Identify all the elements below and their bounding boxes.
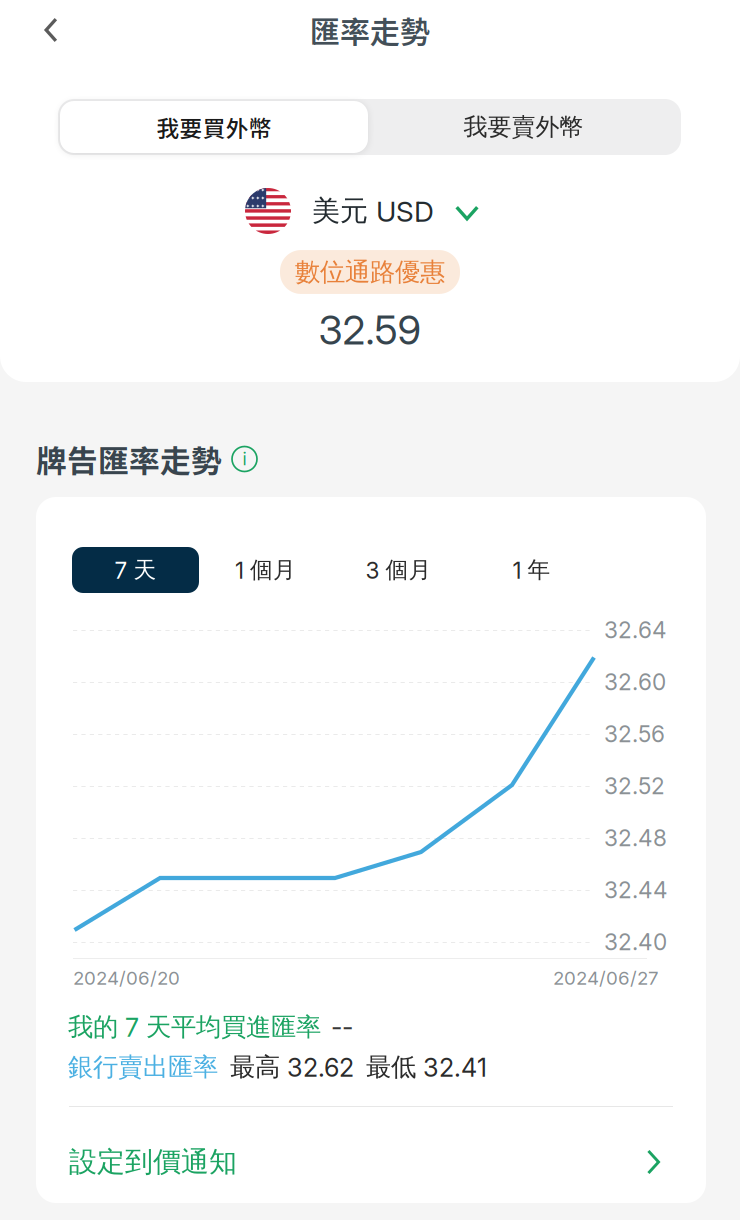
staticText: 32.59: [318, 306, 421, 354]
staticText: 32.44: [604, 876, 668, 904]
staticText: 1 年: [512, 556, 550, 584]
staticText: 最低 32.41: [366, 1051, 487, 1083]
staticText: i: [242, 448, 246, 469]
staticText: 匯率走勢: [310, 8, 430, 52]
staticText: 2024/06/20: [73, 967, 180, 989]
button[interactable]: 1 個月: [199, 547, 332, 593]
staticText: 美元 USD: [312, 193, 434, 229]
staticText: ✦✦✦✦: [246, 203, 266, 209]
button[interactable]: ✦✦✦✦: [0, 185, 732, 237]
staticText: ✦✦✦✦: [246, 195, 266, 201]
button[interactable]: 3 個月: [332, 547, 465, 593]
button[interactable]: 我要賣外幣: [368, 101, 679, 153]
staticText: 32.64: [604, 616, 667, 644]
button[interactable]: 設定到價通知: [36, 1120, 702, 1204]
staticText: 7 天: [114, 556, 156, 584]
button[interactable]: 返回: [21, 1, 81, 59]
staticText: 我要賣外幣: [463, 112, 583, 142]
staticText: 1 個月: [235, 556, 296, 584]
staticText: 3 個月: [365, 556, 431, 584]
staticText: --: [331, 1012, 353, 1042]
staticText: 32.40: [604, 928, 667, 956]
staticText: 32.60: [604, 668, 666, 696]
staticText: 我的 7 天平均買進匯率: [68, 1011, 321, 1043]
staticText: 數位通路優惠: [295, 256, 445, 288]
staticText: ✦✦✦✦: [246, 187, 266, 193]
staticText: 牌告匯率走勢: [36, 437, 222, 481]
staticText: 設定到價通知: [69, 1144, 237, 1180]
staticText: 2024/06/27: [553, 967, 659, 989]
staticText: 32.48: [604, 824, 667, 852]
staticText: 我要買外幣: [156, 111, 271, 143]
staticText: 32.52: [604, 772, 665, 800]
button[interactable]: 我要買外幣: [60, 101, 368, 153]
staticText: 32.56: [604, 720, 665, 748]
button[interactable]: 7 天: [72, 547, 199, 593]
staticText: 最高 32.62: [230, 1051, 354, 1083]
button[interactable]: 1 年: [465, 547, 598, 593]
staticText: 銀行賣出匯率: [68, 1051, 218, 1083]
